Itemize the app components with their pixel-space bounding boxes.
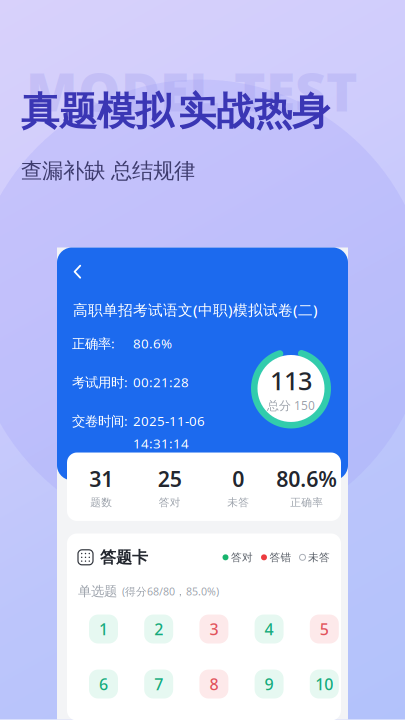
staticText: 实战热身 [178,87,330,136]
staticText: 9 [265,673,274,695]
staticText: 5 [320,618,329,640]
staticText: 考试用时: [72,373,128,391]
button[interactable]: 8 [199,669,228,698]
button[interactable]: 5 [310,614,339,643]
staticText: 4 [265,618,274,640]
staticText: 答错 [269,551,291,564]
staticText: 正确率 [290,496,323,509]
staticText: 未答 [308,551,330,564]
staticText: 80.6% [133,334,172,352]
staticText: 14:31:14 [133,435,189,452]
staticText: 2 [154,618,163,640]
staticText: 高职单招考试语文(中职)模拟试卷(二) [73,300,318,319]
staticText: 8 [209,673,218,695]
button[interactable]: 2 [144,614,173,643]
staticText: 6 [99,673,108,695]
button[interactable]: 6 [89,669,118,698]
button[interactable]: Back [73,264,82,279]
staticText: 未答 [227,496,249,509]
staticText: 单选题 [78,583,117,600]
staticText: 31 [89,464,113,493]
staticText: 题数 [90,496,112,509]
button[interactable]: 1 [89,614,118,643]
staticText: 7 [154,673,163,695]
button[interactable]: 7 [144,669,173,698]
staticText: 交卷时间: [72,412,128,430]
staticText: 2025-11-06 [133,412,205,430]
staticText: (得分68/80，85.0%) [122,584,219,598]
button[interactable]: 9 [255,669,284,698]
staticText: 答对 [231,551,253,564]
staticText: 答对 [159,496,181,509]
staticText: 3 [209,618,218,640]
staticText: 总分 150 [267,397,315,413]
staticText: 80.6% [276,464,337,493]
staticText: 1 [99,618,108,640]
staticText: 正确率: [72,334,115,352]
staticText: MODEL TEST [26,55,358,126]
staticText: 25 [158,464,182,493]
button[interactable]: 10 [310,669,339,698]
button[interactable]: 4 [255,614,284,643]
staticText: 00:21:28 [133,373,189,391]
staticText: 0 [232,464,244,493]
staticText: 113 [270,364,312,397]
staticText: 真题模拟 [21,87,173,136]
button[interactable]: 3 [199,614,228,643]
staticText: 答题卡 [100,547,148,567]
staticText: 10 [315,673,333,695]
staticText: 查漏补缺 总结规律 [21,158,195,184]
